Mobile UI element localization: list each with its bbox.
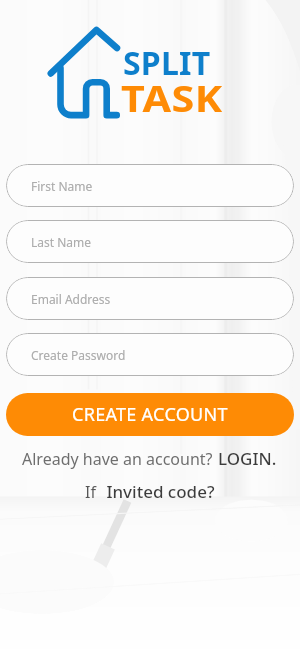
- button[interactable]: Create Password: [6, 333, 294, 376]
- button[interactable]: CREATE ACCOUNT: [6, 393, 294, 436]
- staticText: CREATE ACCOUNT: [72, 402, 228, 427]
- staticText: Email Address: [31, 291, 111, 307]
- staticText: Invited code?: [102, 480, 215, 503]
- staticText: Create Password: [31, 347, 126, 363]
- staticText: SPLIT: [123, 41, 211, 85]
- button[interactable]: LOGIN.: [217, 447, 278, 470]
- button[interactable]: Invited code?: [101, 480, 216, 503]
- button[interactable]: Email Address: [6, 277, 294, 320]
- button[interactable]: First Name: [6, 164, 294, 207]
- staticText: Last Name: [31, 234, 92, 250]
- button[interactable]: Last Name: [6, 220, 294, 263]
- staticText: Already have an account?: [22, 448, 217, 470]
- staticText: If: [85, 481, 101, 503]
- staticText: TASK: [121, 75, 224, 123]
- staticText: First Name: [31, 178, 93, 194]
- staticText: LOGIN.: [218, 447, 277, 470]
